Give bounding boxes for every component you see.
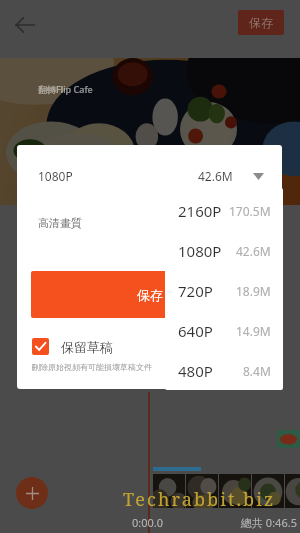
staticText: 保存 xyxy=(249,15,273,30)
staticText: 42.6M xyxy=(198,168,233,184)
button[interactable]: 保存 xyxy=(31,271,268,318)
staticText: 刪除原始視頻有可能損壞草稿文件 xyxy=(32,362,152,372)
staticText: 高清畫質 xyxy=(38,216,82,230)
button[interactable]: Back xyxy=(8,8,42,42)
staticText: 18.9M xyxy=(236,283,271,299)
staticText: 8.4M xyxy=(243,363,271,379)
button[interactable]: 保留草稿 xyxy=(32,338,113,355)
staticText: 2160P xyxy=(178,201,222,221)
button[interactable]: 保存 xyxy=(238,10,284,35)
staticText: 480P xyxy=(178,361,213,381)
staticText: 保存 xyxy=(137,287,163,303)
staticText: 1080P xyxy=(178,241,222,261)
button[interactable]: 480P xyxy=(165,351,283,390)
staticText: 總共 0:46.5 xyxy=(241,515,297,530)
button[interactable]: 720P xyxy=(165,271,283,311)
staticText: 14.9M xyxy=(236,323,271,339)
staticText: 翻轉Flip Cafe xyxy=(38,83,93,95)
staticText: 1080P xyxy=(38,168,73,184)
staticText: 170.5M xyxy=(229,203,271,219)
button[interactable]: Sticker xyxy=(277,430,300,448)
button[interactable]: 1080P xyxy=(165,231,283,271)
staticText: 640P xyxy=(178,321,213,341)
button[interactable]: Add clip xyxy=(16,477,48,509)
staticText: 42.6M xyxy=(236,243,271,259)
button[interactable]: 1080P xyxy=(17,145,282,207)
staticText: 0:00.0 xyxy=(132,515,164,530)
staticText: 720P xyxy=(178,281,213,301)
button[interactable]: 640P xyxy=(165,311,283,351)
staticText: 保留草稿 xyxy=(61,339,113,355)
staticText: Techrabbit.biz xyxy=(123,487,276,512)
button[interactable]: 2160P xyxy=(165,191,283,231)
